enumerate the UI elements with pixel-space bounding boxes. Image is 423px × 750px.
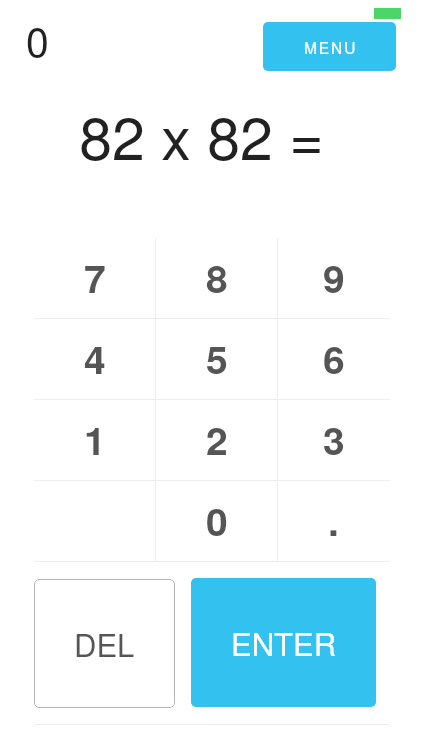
staticText: 7 xyxy=(84,249,106,305)
staticText: 8 xyxy=(206,249,228,305)
button[interactable]: 4 xyxy=(34,319,156,399)
button[interactable]: 2 xyxy=(156,400,278,480)
button[interactable]: 8 xyxy=(156,238,278,318)
staticText: 6 xyxy=(323,330,345,386)
button[interactable]: 9 xyxy=(278,238,389,318)
staticText: 0 xyxy=(206,492,228,548)
button[interactable]: 0 xyxy=(156,481,278,561)
staticText: . xyxy=(328,492,339,548)
staticText: 5 xyxy=(206,330,228,386)
button[interactable]: ENTER xyxy=(191,578,376,707)
button[interactable]: 3 xyxy=(278,400,389,480)
staticText: 9 xyxy=(323,249,345,305)
button[interactable]: 7 xyxy=(34,238,156,318)
button[interactable]: 1 xyxy=(34,400,156,480)
button[interactable]: . xyxy=(278,481,389,561)
button[interactable]: MENU xyxy=(263,22,396,71)
staticText: 1 xyxy=(84,411,106,467)
staticText: MENU xyxy=(304,36,358,58)
staticText: DEL xyxy=(74,621,135,665)
button[interactable]: 6 xyxy=(278,319,389,399)
staticText: 82 x 82 = xyxy=(79,92,324,176)
button[interactable]: DEL xyxy=(34,579,175,708)
staticText: 3 xyxy=(323,411,345,467)
staticText: ENTER xyxy=(231,620,337,664)
staticText: 0 xyxy=(26,10,49,69)
staticText: 4 xyxy=(84,330,106,386)
button[interactable]: 5 xyxy=(156,319,278,399)
staticText: 2 xyxy=(206,411,228,467)
